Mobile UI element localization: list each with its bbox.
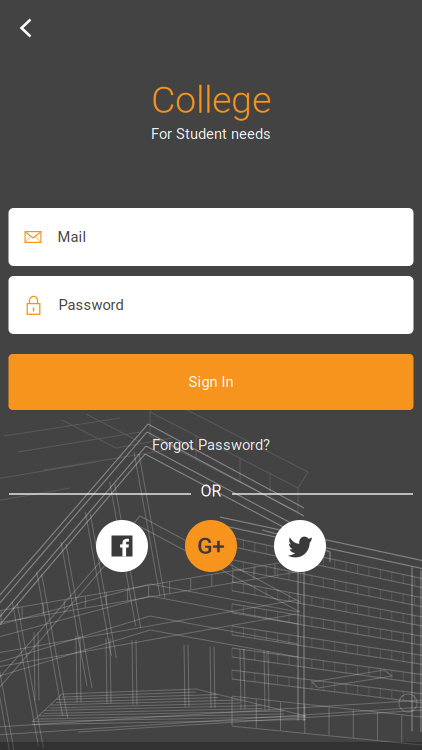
staticText: OR	[200, 482, 221, 500]
staticText: Forgot Password?	[152, 436, 270, 454]
button[interactable]: Password	[8, 276, 413, 334]
button[interactable]: Sign In	[8, 354, 413, 410]
staticText: Password	[58, 296, 123, 314]
staticText: College	[151, 78, 271, 122]
button[interactable]: Forgot Password?	[141, 432, 281, 458]
button[interactable]: Mail	[8, 208, 413, 266]
staticText: Mail	[57, 228, 86, 246]
staticText: For Student needs	[151, 125, 271, 143]
button[interactable]: Sign in with Facebook	[96, 520, 148, 572]
button[interactable]: Sign in with Google	[185, 520, 237, 572]
button[interactable]: Back	[4, 6, 48, 50]
staticText: G+	[197, 533, 225, 559]
staticText: Sign In	[188, 373, 233, 391]
button[interactable]: Sign in with Twitter	[274, 520, 326, 572]
